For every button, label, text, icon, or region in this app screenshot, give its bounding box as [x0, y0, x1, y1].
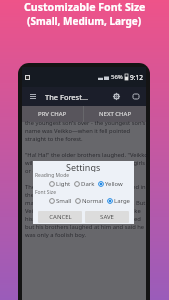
staticText: Dark: [81, 180, 95, 188]
staticText: Normal: [82, 197, 104, 205]
button[interactable]: PRV CHAP: [22, 106, 83, 122]
button[interactable]: Open navigation menu: [28, 92, 37, 101]
staticText: 9:12: [130, 73, 143, 82]
staticText: Reading Mode: [35, 172, 70, 179]
button[interactable]: Settings: [111, 91, 122, 102]
button[interactable]: CANCEL: [38, 211, 82, 223]
button[interactable]: Yellow: [98, 180, 123, 188]
staticText: straight to the forest.: [25, 135, 83, 143]
button[interactable]: Dark: [74, 180, 95, 188]
button[interactable]: Light: [49, 180, 71, 188]
staticText: The Forest...: [45, 92, 88, 102]
staticText: Large: [114, 197, 131, 205]
staticText: Settings: [66, 161, 101, 172]
staticText: (Small, Medium, Large): [27, 14, 142, 28]
button[interactable]: Bookmark: [130, 91, 141, 102]
staticText: CANCEL: [49, 213, 72, 221]
staticText: making a good joke at Veikko's expense. …: [25, 199, 146, 207]
staticText: Yellow: [105, 180, 123, 188]
button[interactable]: Normal: [75, 197, 104, 205]
staticText: Veikko said he was perfectly willing to …: [25, 207, 141, 215]
staticText: Small: [56, 197, 72, 205]
staticText: his chances and go where the tree pointe…: [25, 215, 141, 223]
staticText: name was Veikko—when it fell pointed: [25, 127, 131, 135]
button[interactable]: SAVE: [85, 211, 129, 223]
staticText: Light: [56, 180, 71, 188]
staticText: was only a foolish boy.: [25, 231, 87, 239]
staticText: "Ha! Ha!" the older brothers laughed. "V…: [25, 151, 148, 159]
staticText: the forest and they thought they were: [25, 191, 129, 199]
button[interactable]: NEXT CHAP: [84, 106, 146, 122]
staticText: but his brothers laughed at him and said…: [25, 223, 145, 231]
staticText: SAVE: [100, 213, 114, 221]
staticText: Font Size: [35, 189, 57, 196]
staticText: or one of the Foxes!": [25, 167, 82, 175]
staticText: Customizable Font Size: [24, 0, 146, 14]
button[interactable]: Small: [49, 197, 72, 205]
staticText: will have to go courting one of the Wolf…: [25, 159, 146, 167]
staticText: PRV CHAP: [38, 110, 67, 118]
staticText: NEXT CHAP: [99, 110, 132, 118]
staticText: 56%: [111, 73, 123, 81]
staticText: the youngest son's over - the youngest s…: [25, 119, 146, 127]
button[interactable]: Large: [107, 197, 131, 205]
staticText: They meant by this that only animals liv…: [25, 183, 146, 191]
